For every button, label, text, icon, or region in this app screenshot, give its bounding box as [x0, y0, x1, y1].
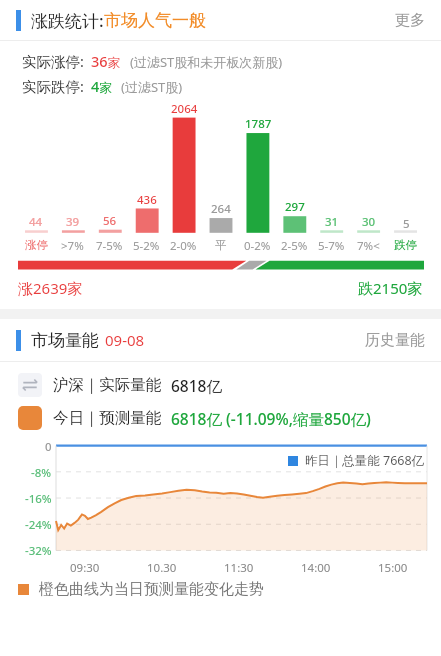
- staticText: -24%: [25, 517, 52, 533]
- staticText: 56: [103, 213, 117, 229]
- staticText: 6818亿 (-11.09%,缩量850亿): [171, 408, 371, 429]
- staticText: (过滤ST股): [121, 78, 183, 96]
- staticText: 30: [362, 214, 376, 230]
- staticText: 2064: [171, 101, 198, 117]
- button[interactable]: 今日｜预测量能: [18, 406, 441, 430]
- staticText: 36家: [91, 51, 121, 71]
- staticText: 4家: [91, 76, 112, 96]
- staticText: 市场人气一般: [104, 10, 206, 31]
- staticText: 平: [215, 238, 227, 252]
- button[interactable]: [0, 256, 441, 272]
- staticText: 涨跌统计:: [31, 9, 104, 32]
- staticText: 39: [66, 214, 80, 230]
- staticText: 14:00: [301, 560, 331, 576]
- staticText: 涨2639家: [18, 278, 83, 298]
- staticText: 涨停: [25, 238, 48, 252]
- staticText: -32%: [25, 543, 52, 559]
- staticText: 2-0%: [170, 238, 197, 254]
- button[interactable]: 涨跌统计:: [0, 0, 441, 40]
- button[interactable]: Switch market: [18, 373, 441, 397]
- staticText: -16%: [25, 491, 52, 507]
- other: Switch market: [18, 373, 42, 397]
- staticText: 历史量能: [365, 331, 425, 350]
- staticText: 0: [45, 439, 52, 455]
- staticText: 1787: [245, 116, 272, 132]
- staticText: 沪深｜实际量能: [53, 375, 162, 395]
- staticText: 更多: [395, 11, 425, 30]
- staticText: 跌停: [394, 238, 417, 252]
- staticText: 6818亿: [171, 375, 222, 396]
- staticText: -8%: [31, 465, 52, 481]
- staticText: 297: [285, 199, 305, 215]
- button[interactable]: 市场量能: [0, 319, 441, 361]
- staticText: 实际涨停:: [22, 51, 84, 71]
- staticText: 11:30: [224, 560, 254, 576]
- staticText: 15:00: [378, 560, 408, 576]
- staticText: >7%: [61, 238, 84, 254]
- staticText: 7-5%: [96, 238, 123, 254]
- staticText: 5: [403, 216, 410, 232]
- staticText: 5-7%: [318, 238, 345, 254]
- staticText: 0-2%: [244, 238, 271, 254]
- staticText: 2-5%: [281, 238, 308, 254]
- staticText: 昨日｜总量能 7668亿: [305, 452, 425, 469]
- staticText: 今日｜预测量能: [53, 408, 162, 428]
- staticText: 7%<: [357, 238, 380, 254]
- staticText: 09:30: [70, 560, 100, 576]
- staticText: 5-2%: [133, 238, 160, 254]
- staticText: 44: [29, 214, 43, 230]
- staticText: 橙色曲线为当日预测量能变化走势: [39, 580, 264, 599]
- staticText: 264: [211, 201, 231, 217]
- staticText: 436: [137, 192, 157, 208]
- staticText: 市场量能: [31, 330, 99, 351]
- staticText: 实际跌停:: [22, 76, 84, 96]
- staticText: (过滤ST股和未开板次新股): [130, 53, 283, 71]
- staticText: 10.30: [147, 560, 177, 576]
- staticText: 跌2150家: [358, 278, 423, 298]
- staticText: 31: [325, 214, 339, 230]
- staticText: 09-08: [105, 330, 145, 350]
